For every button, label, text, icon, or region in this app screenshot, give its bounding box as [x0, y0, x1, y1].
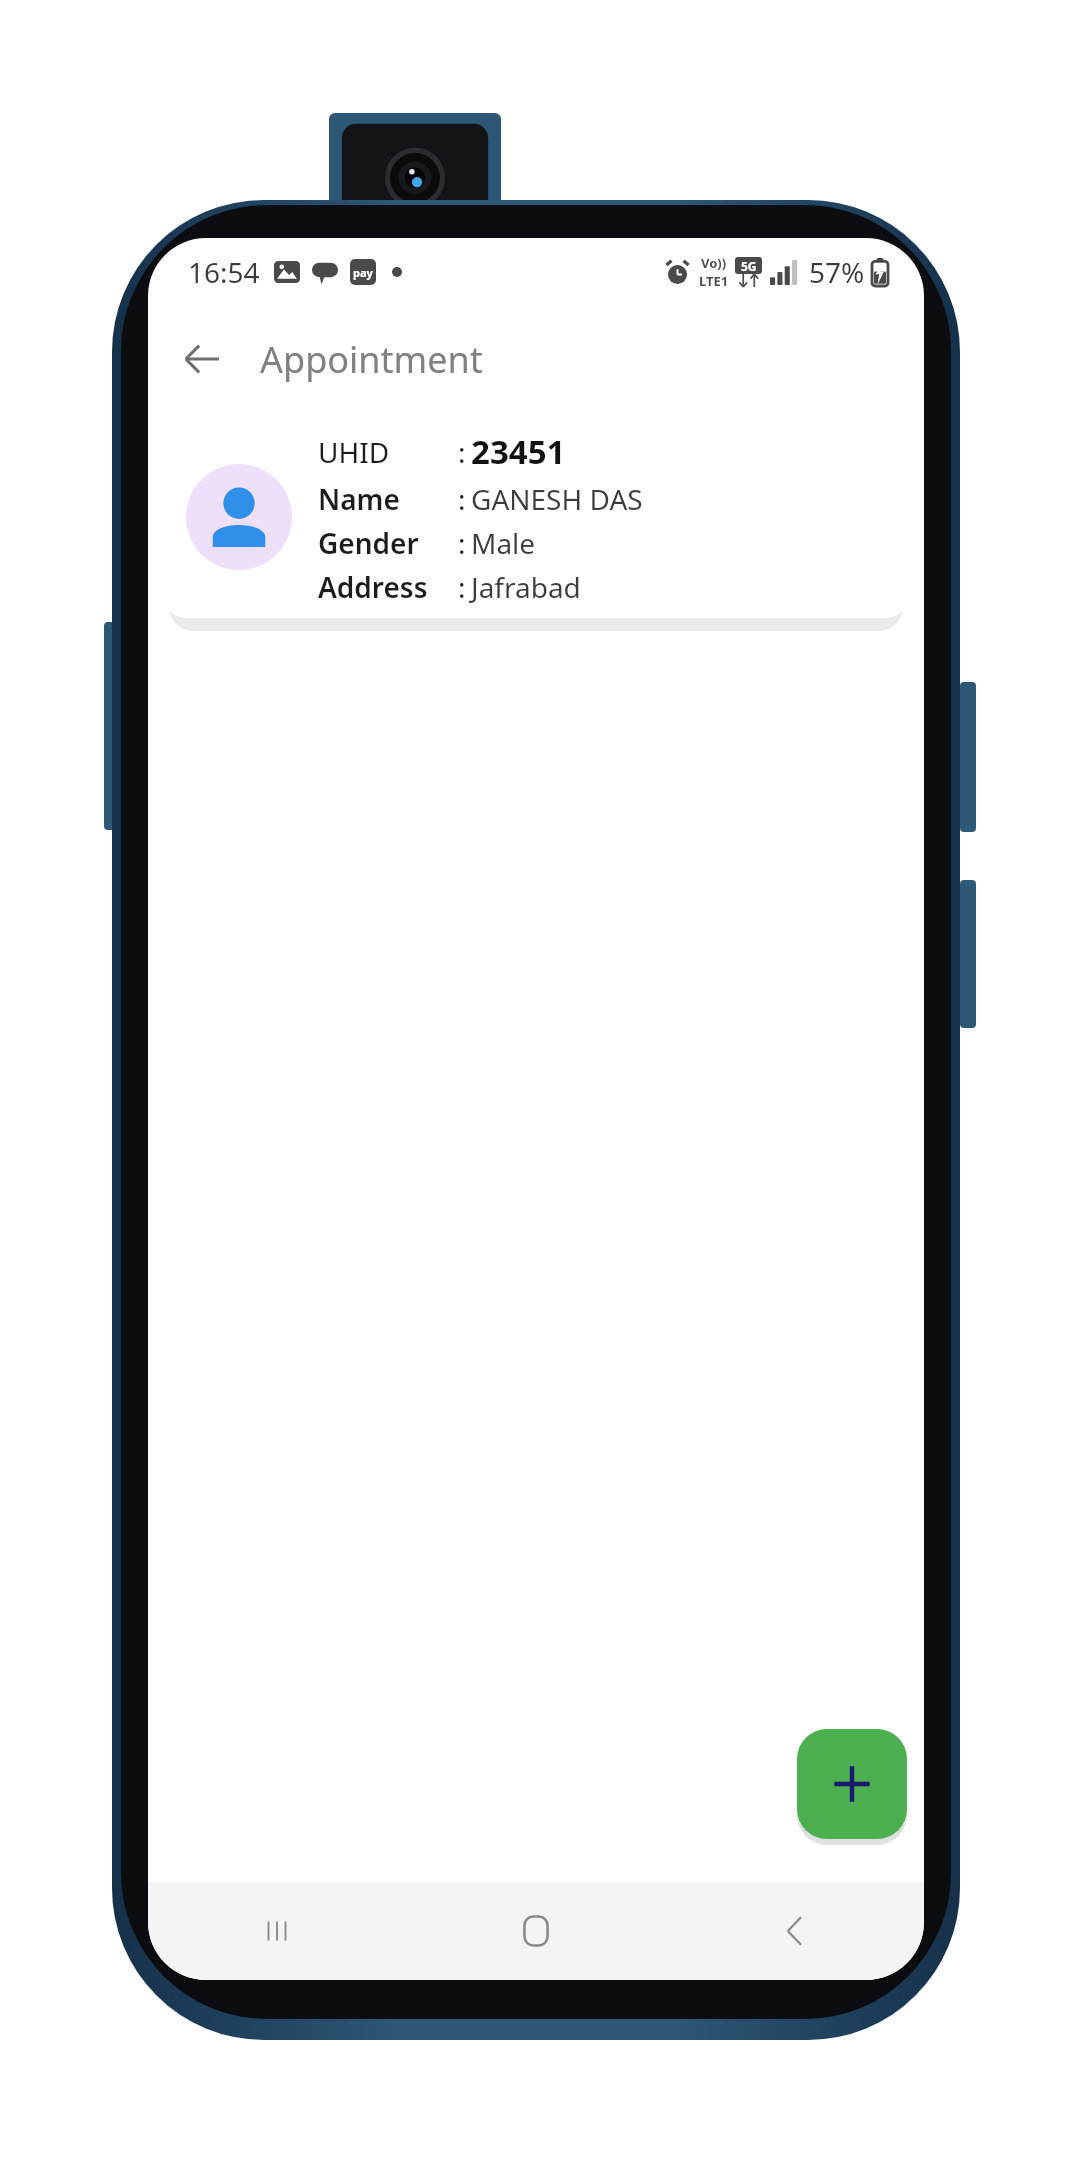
staticText: Jafrabad	[471, 568, 581, 606]
staticText: Gender	[318, 524, 419, 562]
staticText: Appointment	[260, 335, 483, 384]
staticText: Male	[471, 524, 536, 562]
button[interactable]: Back	[665, 1882, 924, 1980]
button[interactable]: Home	[406, 1882, 665, 1980]
staticText: Vo))	[701, 254, 727, 272]
staticText: :	[458, 568, 466, 606]
button[interactable]: Add appointment	[797, 1729, 907, 1839]
staticText: 23451	[471, 429, 566, 474]
staticText: Address	[318, 568, 428, 606]
staticText: :	[458, 524, 466, 562]
staticText: LTE1	[699, 272, 729, 290]
staticText: :	[458, 480, 466, 518]
staticText: Name	[318, 480, 400, 518]
staticText: GANESH DAS	[471, 480, 643, 518]
staticText: 16:54	[188, 253, 260, 291]
button[interactable]: Recents	[148, 1882, 406, 1980]
staticText: UHID	[318, 433, 390, 471]
button[interactable]: Back	[168, 325, 236, 393]
staticText: 57%	[809, 253, 865, 291]
staticText: pay	[353, 265, 373, 280]
staticText: 5G	[741, 258, 757, 274]
button[interactable]: UHID	[164, 416, 908, 618]
staticText: :	[458, 433, 466, 471]
